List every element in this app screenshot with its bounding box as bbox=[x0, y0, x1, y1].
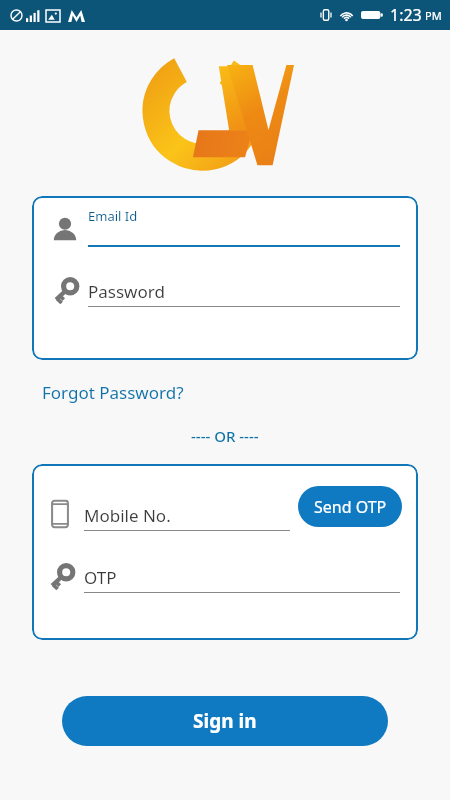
staticText: Send OTP bbox=[314, 496, 387, 518]
button[interactable]: Email Id bbox=[52, 207, 400, 247]
staticText: Mobile No. bbox=[84, 504, 171, 527]
staticText: ---- OR ---- bbox=[191, 426, 259, 446]
button[interactable]: Password bbox=[52, 279, 400, 307]
button[interactable]: Forgot Password? bbox=[40, 379, 186, 406]
staticText: 1:23 bbox=[390, 4, 422, 26]
staticText: Password bbox=[88, 280, 165, 303]
button[interactable]: Mobile No. bbox=[48, 499, 298, 531]
staticText: PM bbox=[425, 8, 442, 23]
staticText: Email Id bbox=[88, 207, 138, 225]
staticText: Sign in bbox=[193, 708, 257, 734]
staticText: OTP bbox=[84, 566, 117, 589]
button[interactable]: Send OTP bbox=[298, 486, 402, 527]
button[interactable]: Sign in bbox=[62, 696, 388, 746]
staticText: Forgot Password? bbox=[42, 381, 184, 404]
button[interactable]: OTP bbox=[48, 565, 400, 593]
